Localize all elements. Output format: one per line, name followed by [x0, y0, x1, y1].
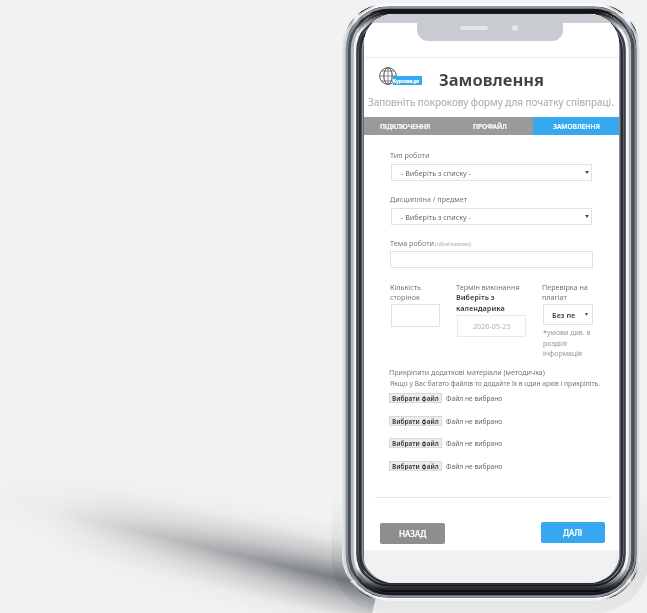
staticText: плагіат: [542, 292, 567, 302]
staticText: ДАЛІ: [563, 527, 583, 538]
button[interactable]: - Виберіть з списку -: [391, 208, 592, 225]
button[interactable]: - Виберіть з списку -: [391, 164, 592, 181]
button[interactable]: Вибрати файл: [389, 416, 442, 426]
staticText: умови див. в: [547, 328, 591, 338]
staticText: ПРОФАЙЛ: [473, 122, 507, 131]
button[interactable]: Вибрати файл: [389, 438, 442, 448]
staticText: Файл не вибрано: [446, 462, 503, 471]
button[interactable]: Вибрати файл: [389, 393, 442, 403]
staticText: Якщо у Вас багато файлів то додайте їх в…: [390, 379, 600, 388]
button[interactable]: [390, 251, 593, 268]
button[interactable]: 2020-05-25: [457, 315, 526, 337]
staticText: розділі: [543, 339, 567, 349]
staticText: Перевірка на: [542, 282, 588, 292]
button[interactable]: Вибрати файл: [389, 461, 442, 471]
staticText: Вибрати файл: [392, 417, 439, 426]
staticText: Дисципліна / предмет: [390, 194, 468, 204]
staticText: Вибрати файл: [392, 462, 439, 471]
staticText: Курсова.укр: [393, 78, 422, 84]
staticText: - Виберіть з списку -: [401, 168, 471, 178]
staticText: НАЗАД: [399, 528, 427, 539]
staticText: Кількість: [390, 282, 421, 292]
staticText: Тип роботи: [390, 150, 430, 160]
button[interactable]: [391, 304, 440, 327]
button[interactable]: ЗАМОВЛЕННЯ: [533, 117, 619, 135]
staticText: Замовлення: [439, 68, 545, 90]
staticText: Файл не вибрано: [446, 417, 503, 426]
staticText: інформація: [543, 349, 583, 359]
staticText: Термін виконання: [456, 282, 520, 292]
staticText: Прикріпити додаткові матеріали (методичк…: [389, 367, 545, 377]
button[interactable]: ПІДКЛЮЧЕННЯ: [364, 117, 447, 135]
staticText: Без пе: [552, 310, 576, 320]
staticText: Файл не вибрано: [446, 394, 503, 403]
staticText: Вибрати файл: [392, 394, 439, 403]
staticText: Вибрати файл: [392, 439, 439, 448]
staticText: *: [543, 328, 547, 338]
staticText: Тема роботи: [390, 238, 434, 248]
button[interactable]: ПРОФАЙЛ: [447, 117, 533, 135]
button[interactable]: ДАЛІ: [541, 522, 605, 543]
button[interactable]: Без пе: [543, 304, 593, 325]
staticText: Заповніть покрокову форму для початку сп…: [368, 95, 614, 108]
staticText: календарика: [456, 303, 505, 313]
button[interactable]: НАЗАД: [380, 523, 445, 544]
staticText: ЗАМОВЛЕННЯ: [553, 122, 600, 131]
staticText: Виберіть з: [456, 292, 495, 302]
staticText: сторінок: [390, 292, 420, 302]
staticText: Файл не вибрано: [446, 439, 503, 448]
staticText: (обов'язково): [435, 240, 471, 247]
staticText: 2020-05-25: [473, 321, 511, 331]
staticText: - Виберіть з списку -: [401, 212, 471, 222]
staticText: ПІДКЛЮЧЕННЯ: [380, 122, 431, 131]
